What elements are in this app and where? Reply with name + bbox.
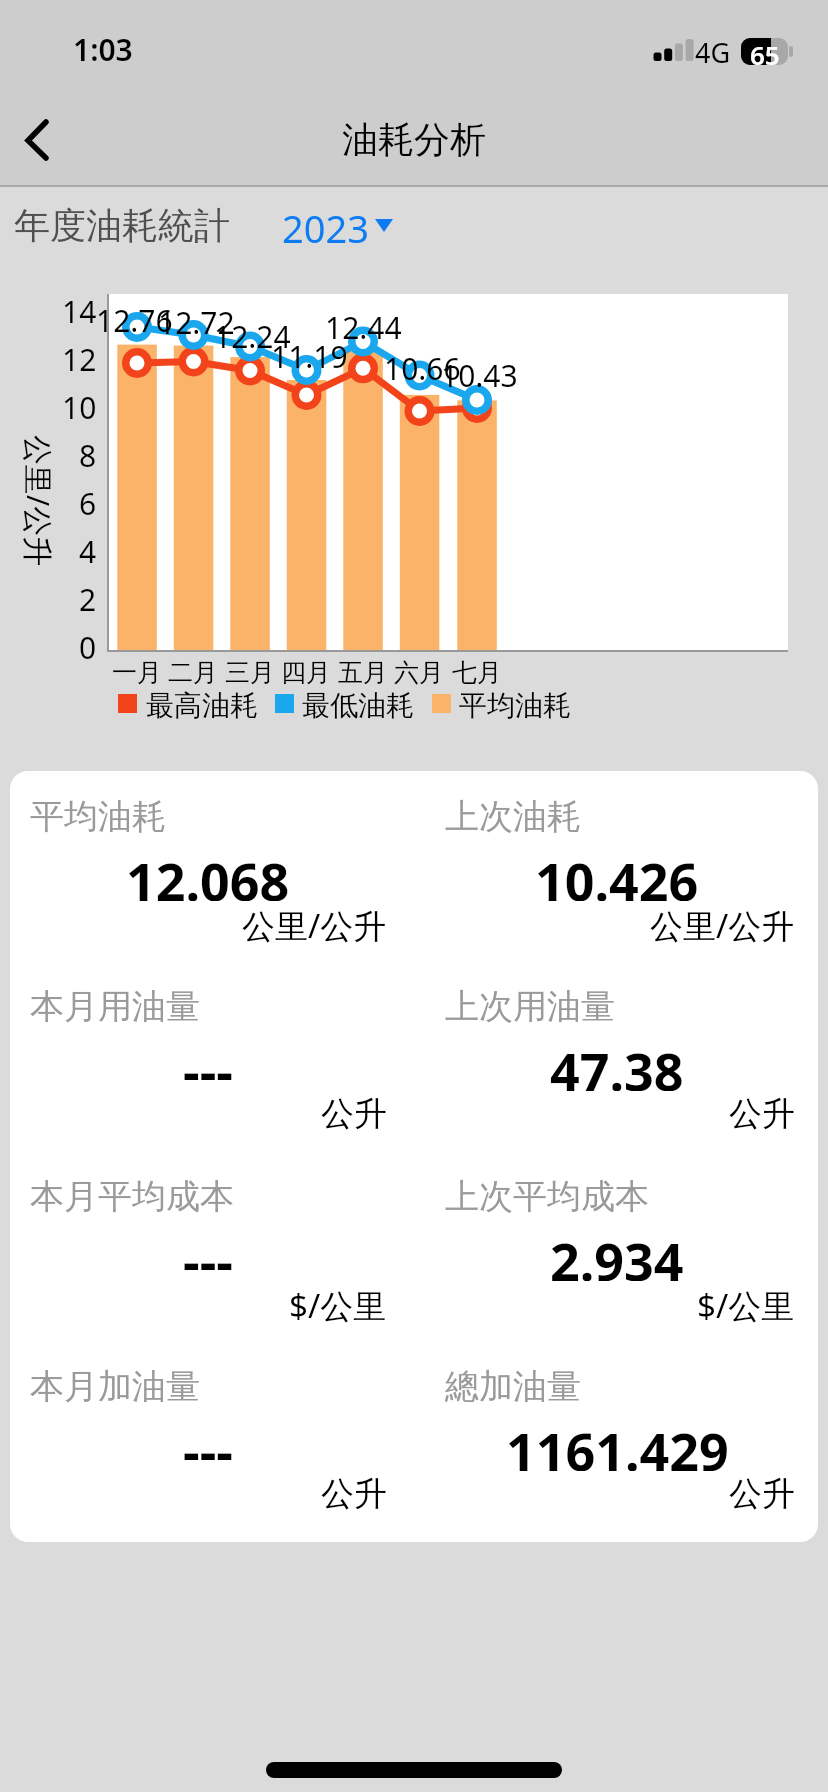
staticText: 12 xyxy=(62,339,97,379)
staticText: 最低油耗 xyxy=(302,688,414,723)
button[interactable]: 2023 xyxy=(278,200,403,246)
staticText: 本月用油量 xyxy=(30,985,200,1025)
staticText: 五月 xyxy=(338,657,388,688)
staticText: 總加油量 xyxy=(445,1365,581,1405)
button[interactable] xyxy=(10,1151,414,1341)
staticText: --- xyxy=(183,1415,233,1471)
staticText: 0 xyxy=(79,627,97,667)
staticText: 10 xyxy=(62,387,97,427)
staticText: 一月 xyxy=(112,657,162,688)
button[interactable] xyxy=(414,1341,818,1531)
staticText: 公升 xyxy=(321,1093,387,1133)
staticText: $/公里 xyxy=(697,1283,795,1323)
button[interactable] xyxy=(414,771,818,961)
staticText: 公里/公升 xyxy=(650,903,795,943)
staticText: 三月 xyxy=(225,657,275,688)
staticText: 11.19 xyxy=(271,336,348,372)
staticText: 公升 xyxy=(729,1093,795,1133)
staticText: 年度油耗統計 xyxy=(14,203,230,243)
staticText: 8 xyxy=(79,435,97,475)
staticText: 10.43 xyxy=(441,355,518,391)
staticText: 12.24 xyxy=(214,316,291,352)
staticText: 65 xyxy=(750,37,780,66)
staticText: 6 xyxy=(79,483,97,523)
staticText: 47.38 xyxy=(550,1035,684,1091)
staticText: 最高油耗 xyxy=(146,688,258,723)
button[interactable] xyxy=(414,1151,818,1341)
staticText: 1:03 xyxy=(73,29,133,70)
staticText: 10.66 xyxy=(384,348,461,384)
staticText: 平均油耗 xyxy=(30,795,166,835)
staticText: 四月 xyxy=(281,657,331,688)
staticText: 本月加油量 xyxy=(30,1365,200,1405)
staticText: 10.426 xyxy=(535,845,699,901)
staticText: 公里/公升 xyxy=(19,435,59,567)
staticText: 1161.429 xyxy=(506,1415,729,1471)
button[interactable] xyxy=(10,961,414,1151)
staticText: 12.44 xyxy=(325,307,402,343)
staticText: 油耗分析 xyxy=(342,117,486,162)
staticText: 公升 xyxy=(321,1473,387,1513)
staticText: 2.934 xyxy=(550,1225,684,1281)
staticText: 上次平均成本 xyxy=(445,1175,649,1215)
staticText: 二月 xyxy=(168,657,218,688)
staticText: 12.76 xyxy=(96,300,173,336)
staticText: 12.068 xyxy=(126,845,290,901)
button[interactable] xyxy=(20,110,70,172)
button[interactable] xyxy=(10,771,414,961)
button[interactable] xyxy=(414,961,818,1151)
staticText: 12.72 xyxy=(158,302,235,338)
staticText: 2 xyxy=(79,579,97,619)
staticText: 公里/公升 xyxy=(242,903,387,943)
staticText: 平均油耗 xyxy=(459,688,571,723)
staticText: 上次用油量 xyxy=(445,985,615,1025)
staticText: $/公里 xyxy=(289,1283,387,1323)
staticText: 14 xyxy=(62,291,97,331)
staticText: 上次油耗 xyxy=(445,795,581,835)
staticText: 本月平均成本 xyxy=(30,1175,234,1215)
staticText: 2023 xyxy=(282,202,368,244)
staticText: 六月 xyxy=(394,657,444,688)
staticText: --- xyxy=(183,1035,233,1091)
staticText: 4 xyxy=(79,531,97,571)
staticText: 七月 xyxy=(452,657,502,688)
staticText: 4G xyxy=(695,34,731,70)
staticText: 公升 xyxy=(729,1473,795,1513)
button[interactable] xyxy=(10,1341,414,1531)
staticText: --- xyxy=(183,1225,233,1281)
